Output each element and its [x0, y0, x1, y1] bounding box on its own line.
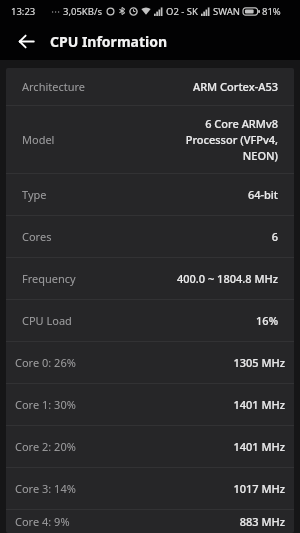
staticText: Core 4: 9%	[15, 514, 70, 529]
staticText: 3,05KB/s	[63, 5, 102, 18]
staticText: Model	[22, 132, 55, 147]
button[interactable]: Core 3: 14%	[6, 468, 294, 509]
button[interactable]: Core 0: 26%	[6, 342, 294, 383]
button[interactable]: Type	[6, 174, 294, 215]
staticText: ARM Cortex-A53	[192, 79, 278, 94]
staticText: Core 3: 14%	[15, 481, 76, 496]
staticText: Cores	[22, 229, 52, 244]
staticText: 1401 MHz	[233, 439, 285, 454]
staticText: Architecture	[22, 79, 86, 94]
button[interactable]: Frequency	[6, 258, 294, 299]
staticText: Type	[22, 187, 47, 202]
staticText: 81%	[262, 5, 281, 18]
button[interactable]: Back	[13, 28, 39, 54]
staticText: 883 MHz	[239, 514, 285, 529]
staticText: Frequency	[22, 271, 76, 286]
staticText: Core 2: 20%	[15, 439, 76, 454]
button[interactable]: Architecture	[6, 68, 294, 105]
button[interactable]: CPU Load	[6, 300, 294, 341]
staticText: 6	[271, 229, 278, 244]
staticText: 400.0 ~ 1804.8 MHz	[176, 271, 278, 286]
staticText: 1305 MHz	[233, 355, 285, 370]
button[interactable]: Cores	[6, 216, 294, 257]
staticText: 6 Core ARMv8 Processor (VFPv4, NEON)	[185, 116, 278, 163]
staticText: 13:23	[11, 5, 36, 18]
button[interactable]: Core 2: 20%	[6, 426, 294, 467]
staticText: CPU Information	[50, 32, 168, 51]
staticText: Core 0: 26%	[15, 355, 76, 370]
staticText: 1401 MHz	[233, 397, 285, 412]
staticText: CPU Load	[22, 313, 72, 328]
staticText: O2 - SK	[166, 5, 198, 18]
staticText: 16%	[256, 313, 278, 328]
staticText: 64-bit	[247, 187, 278, 202]
staticText: 1017 MHz	[233, 481, 285, 496]
button[interactable]: Core 1: 30%	[6, 384, 294, 425]
button[interactable]: Model	[6, 106, 294, 173]
staticText: Core 1: 30%	[15, 397, 76, 412]
staticText: SWAN	[213, 5, 240, 18]
button[interactable]: Core 4: 9%	[6, 510, 294, 533]
